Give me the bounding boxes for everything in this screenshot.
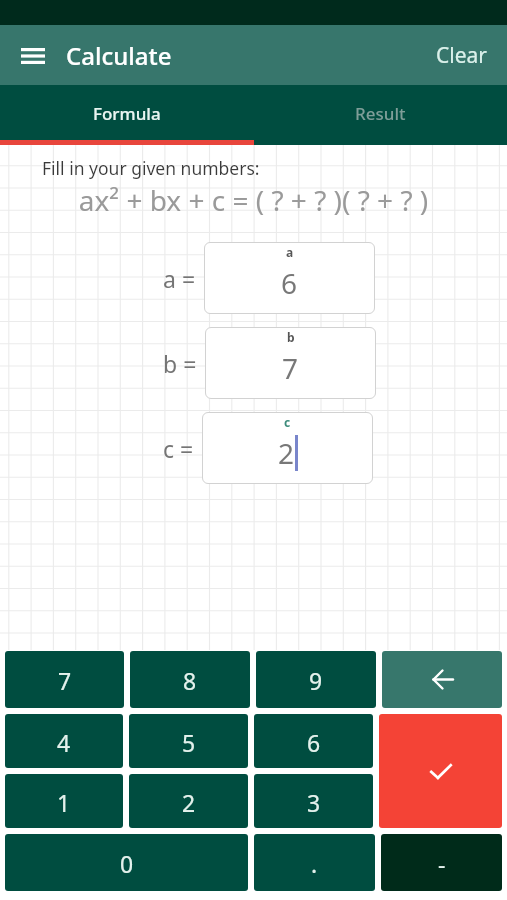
button[interactable]: Backspace: [382, 651, 502, 708]
staticText: 2: [278, 434, 295, 472]
button[interactable]: 2: [129, 774, 248, 828]
staticText: 6: [307, 727, 321, 758]
staticText: 7: [282, 349, 299, 387]
button[interactable]: 3: [254, 774, 373, 828]
staticText: .: [311, 848, 318, 879]
staticText: b: [287, 329, 295, 345]
staticText: Calculate: [66, 39, 172, 72]
staticText: 3: [307, 787, 321, 818]
button[interactable]: a: [204, 242, 375, 314]
staticText: 4: [57, 727, 71, 758]
button[interactable]: 7: [5, 651, 124, 708]
staticText: b =: [163, 348, 197, 379]
staticText: 7: [58, 665, 72, 696]
staticText: 8: [183, 665, 197, 696]
button[interactable]: Confirm: [379, 714, 502, 828]
staticText: 1: [57, 787, 71, 818]
staticText: 5: [182, 727, 196, 758]
staticText: a =: [163, 263, 196, 294]
staticText: 2: [182, 787, 196, 818]
button[interactable]: 4: [5, 714, 123, 768]
staticText: c =: [163, 433, 194, 464]
button[interactable]: Result: [253, 85, 507, 141]
staticText: Fill in your given numbers:: [42, 156, 260, 180]
staticText: 0: [120, 848, 134, 879]
button[interactable]: 1: [5, 774, 123, 828]
button[interactable]: Formula: [0, 85, 253, 141]
button[interactable]: 0: [5, 834, 248, 891]
staticText: Result: [355, 102, 406, 125]
button[interactable]: c: [202, 412, 373, 484]
button[interactable]: 5: [129, 714, 248, 768]
button[interactable]: 9: [256, 651, 376, 708]
staticText: 9: [309, 665, 323, 696]
staticText: Clear: [436, 41, 487, 70]
button[interactable]: Clear: [414, 27, 507, 84]
button[interactable]: 8: [130, 651, 250, 708]
staticText: -: [438, 848, 446, 879]
button[interactable]: 6: [254, 714, 373, 768]
staticText: 6: [281, 264, 298, 302]
button[interactable]: Menu: [12, 35, 53, 76]
button[interactable]: b: [205, 327, 376, 399]
button[interactable]: .: [254, 834, 375, 891]
button[interactable]: -: [381, 834, 502, 891]
staticText: a: [286, 244, 294, 260]
staticText: Formula: [93, 102, 161, 125]
staticText: c: [284, 414, 291, 430]
staticText: ax² + bx + c = ( ? + ? )( ? + ? ): [0, 181, 507, 219]
